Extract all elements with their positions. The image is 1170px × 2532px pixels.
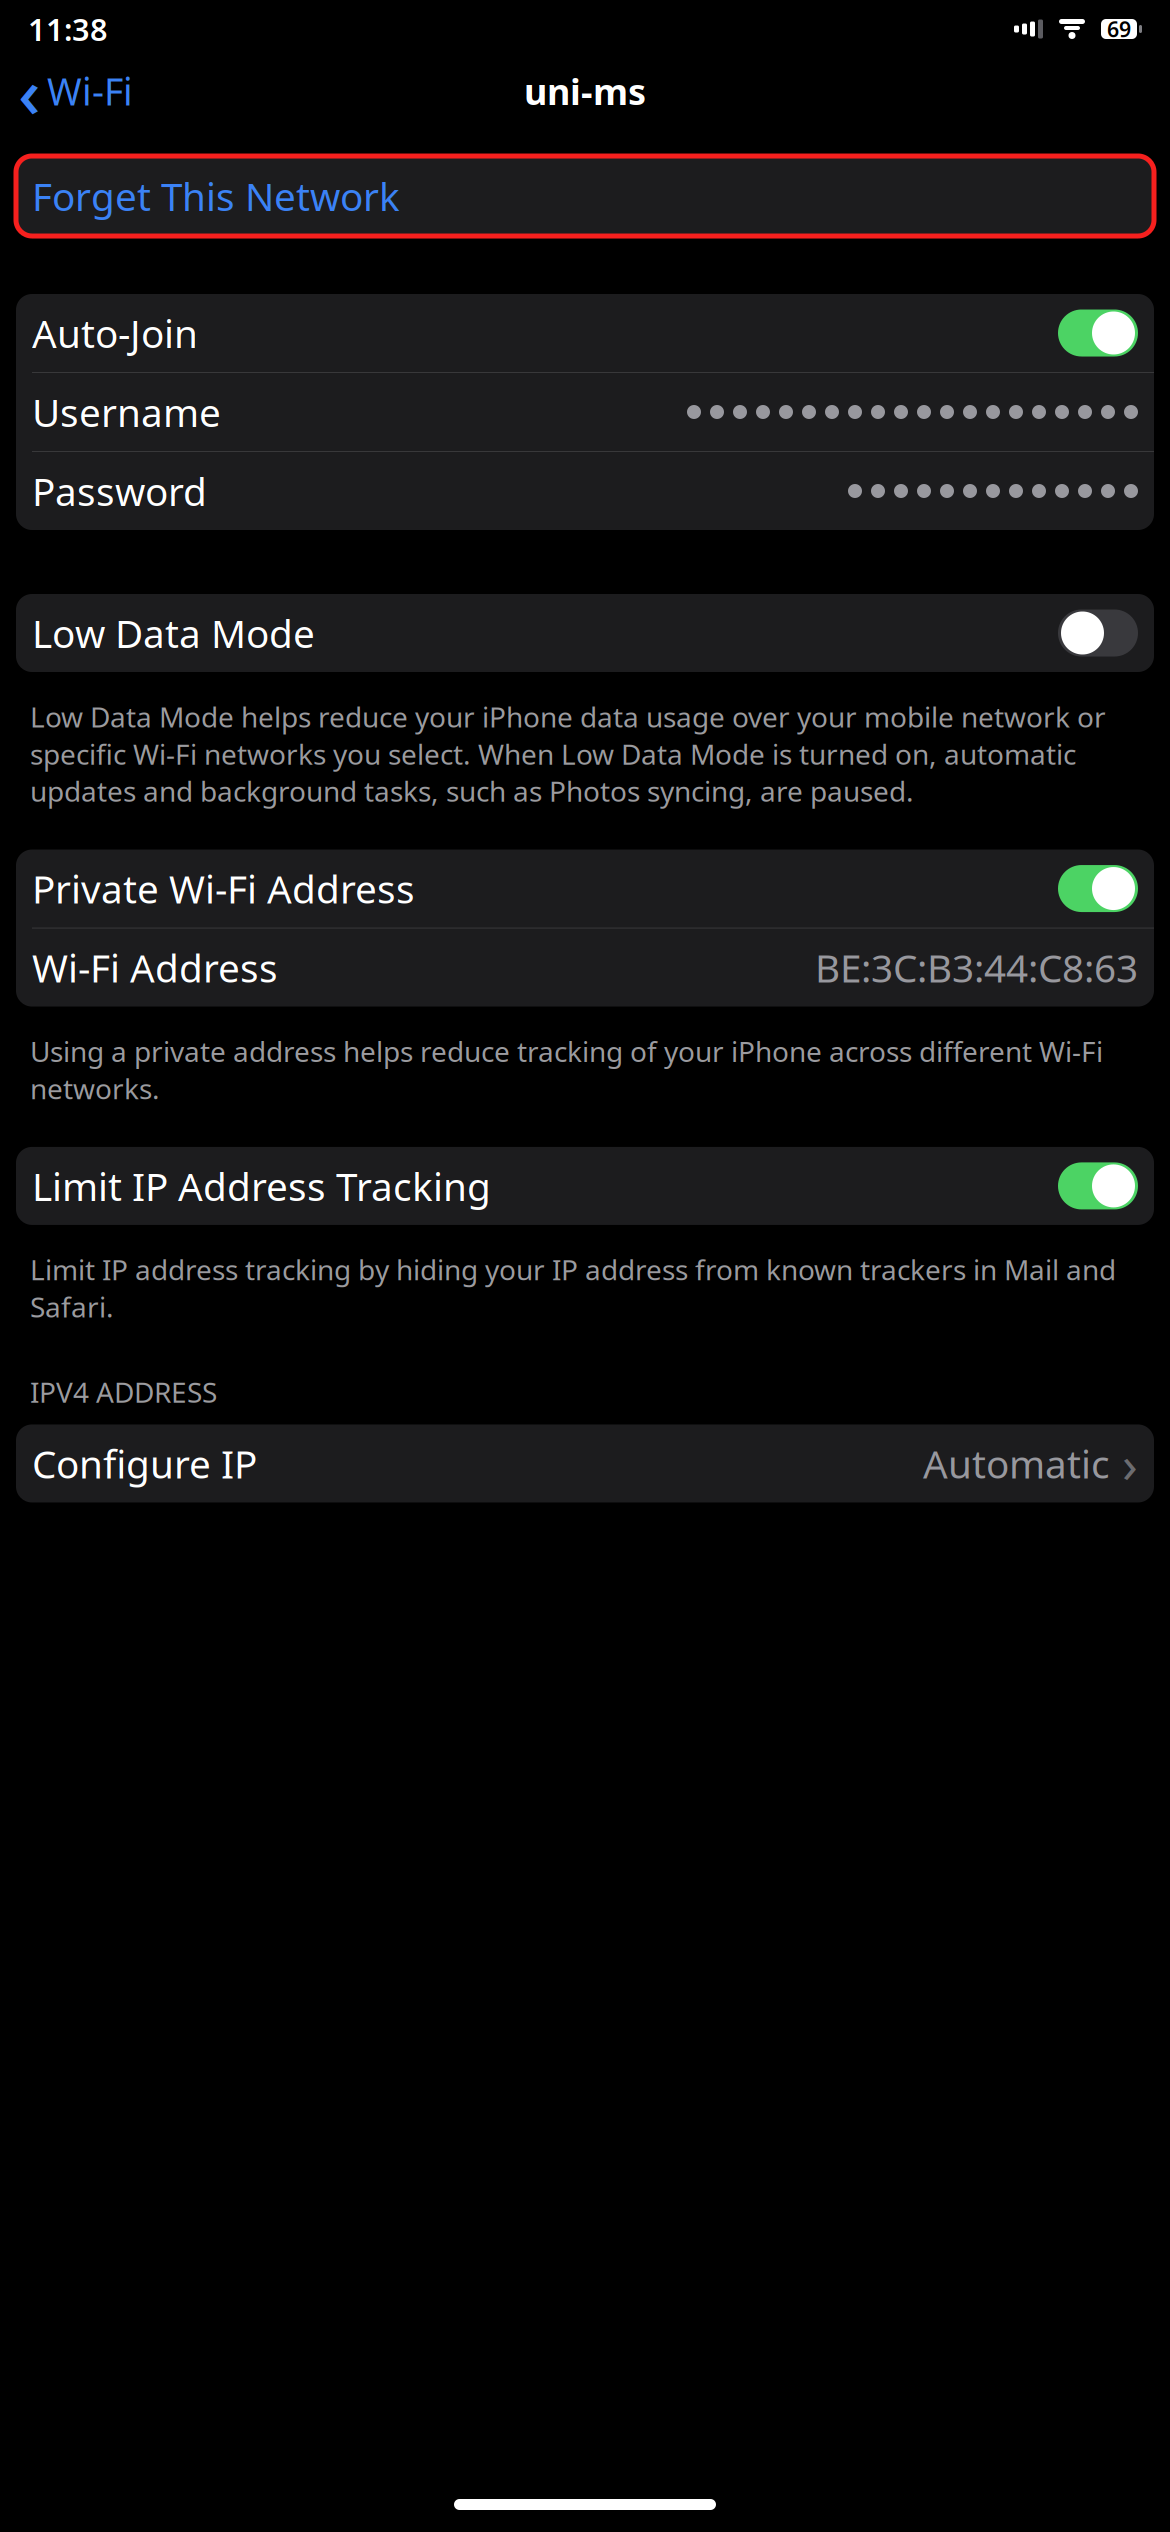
staticText: Limit IP address tracking by hiding your… (30, 1251, 1116, 1325)
button[interactable]: ‹ (0, 39, 149, 143)
staticText: BE:3C:B3:44:C8:63 (815, 942, 1138, 993)
staticText: Automatic (923, 1438, 1110, 1489)
staticText: 11:38 (28, 9, 108, 49)
staticText: Auto-Join (32, 307, 198, 359)
staticText: Username (32, 386, 221, 438)
button[interactable]: Configure IP (16, 1424, 1154, 1502)
staticText: › (1122, 1430, 1138, 1497)
staticText: Low Data Mode (32, 607, 315, 659)
button[interactable]: Password (16, 452, 1154, 530)
staticText: 69 (1107, 15, 1131, 43)
staticText: IPV4 ADDRESS (30, 1373, 217, 1410)
button[interactable]: Low Data Mode (16, 594, 1154, 672)
staticText: Limit IP Address Tracking (32, 1160, 491, 1211)
button[interactable]: Auto-Join (16, 294, 1154, 372)
staticText: Wi-Fi (47, 66, 133, 116)
button[interactable]: Wi-Fi Address (16, 928, 1154, 1006)
button[interactable]: Limit IP Address Tracking (16, 1147, 1154, 1225)
staticText: Forget This Network (32, 170, 400, 222)
staticText: Configure IP (32, 1438, 257, 1489)
staticText: Wi-Fi Address (32, 942, 278, 993)
button[interactable]: Private Wi-Fi Address (16, 849, 1154, 927)
staticText: Private Wi-Fi Address (32, 863, 415, 914)
button[interactable]: Forget This Network (0, 156, 1170, 236)
staticText: ‹ (18, 45, 41, 137)
staticText: Password (32, 465, 207, 517)
button[interactable]: Username (16, 373, 1154, 451)
staticText: Low Data Mode helps reduce your iPhone d… (30, 698, 1106, 809)
staticText: Using a private address helps reduce tra… (30, 1032, 1103, 1107)
staticText: uni-ms (524, 67, 646, 115)
